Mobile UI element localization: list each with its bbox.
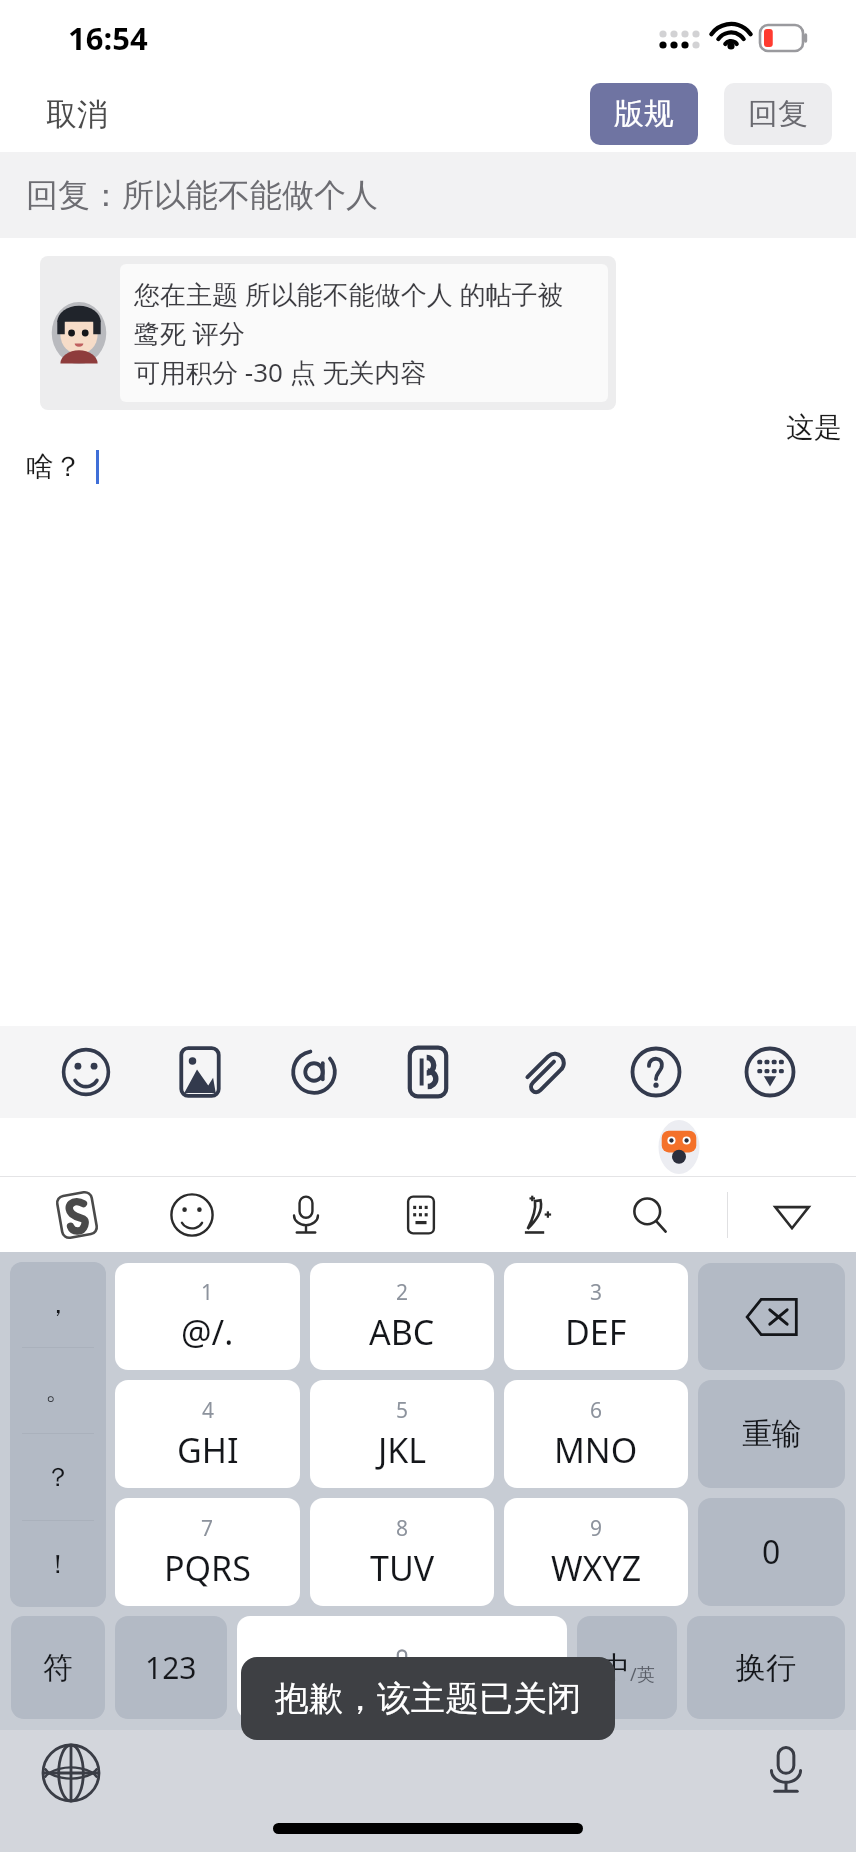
button[interactable]: 0 [698, 1498, 845, 1606]
staticText: 16:54 [68, 17, 148, 59]
button[interactable]: 回复：所以能不能做个人 [0, 152, 856, 238]
button[interactable]: 3 [504, 1263, 688, 1370]
button[interactable]: Emoji [44, 1030, 128, 1114]
staticText: 重输 [742, 1415, 802, 1453]
staticText: ！ [45, 1548, 71, 1581]
staticText: /英 [630, 1662, 655, 1687]
button[interactable]: Help [614, 1030, 698, 1114]
staticText: 啥？ [26, 449, 82, 484]
button[interactable]: 6 [504, 1380, 688, 1488]
button[interactable]: 取消 [24, 85, 130, 144]
staticText: 。 [45, 1374, 71, 1407]
staticText: 1 [201, 1278, 214, 1307]
staticText: TUV [370, 1545, 435, 1591]
button[interactable]: Handwriting [498, 1178, 572, 1252]
button[interactable]: Voice input [237, 1616, 567, 1719]
staticText: WXYZ [551, 1545, 642, 1591]
button[interactable]: Sogou assistant [652, 1120, 706, 1174]
button[interactable]: 重输 [698, 1380, 845, 1488]
button[interactable]: 4 [115, 1380, 300, 1488]
button[interactable]: Hide keyboard [728, 1030, 812, 1114]
staticText: 6 [590, 1396, 603, 1425]
staticText: 5 [396, 1396, 409, 1425]
staticText: 换行 [736, 1649, 796, 1687]
button[interactable]: ？ [10, 1434, 106, 1520]
button[interactable]: 5 [310, 1380, 494, 1488]
button[interactable]: Collapse keyboard [728, 1177, 856, 1252]
button[interactable]: 您在主题 所以能不能做个人 的帖子被 鹭死 评分 可用积分 -30 点 无关内容 [40, 256, 616, 410]
button[interactable]: ， [10, 1262, 106, 1347]
staticText: 123 [145, 1647, 197, 1688]
staticText: 2 [396, 1278, 409, 1307]
staticText: 4 [202, 1396, 215, 1425]
staticText: 9 [590, 1514, 603, 1543]
button[interactable]: 中 [577, 1616, 677, 1719]
button[interactable]: 版规 [590, 83, 698, 145]
button[interactable]: Insert image [158, 1030, 242, 1114]
button[interactable]: Dictation [758, 1742, 814, 1798]
button[interactable]: Attach file [500, 1030, 584, 1114]
button[interactable]: 符 [11, 1616, 105, 1719]
button[interactable]: Mention [272, 1030, 356, 1114]
staticText: JKL [378, 1427, 427, 1473]
staticText: 抱歉，该主题已关闭 [275, 1677, 581, 1720]
button[interactable]: Search [613, 1178, 687, 1252]
button[interactable]: 换行 [687, 1616, 845, 1719]
button[interactable]: Emoji [155, 1178, 229, 1252]
button[interactable]: 1 [115, 1263, 300, 1370]
staticText: 您在主题 所以能不能做个人 的帖子被 鹭死 评分 可用积分 -30 点 无关内容 [134, 276, 594, 390]
button[interactable]: Bold [386, 1030, 470, 1114]
button[interactable]: 123 [115, 1616, 227, 1719]
button[interactable]: Switch input language [40, 1742, 102, 1804]
button[interactable]: Sogou input settings [40, 1178, 114, 1252]
staticText: @/. [181, 1309, 234, 1355]
button[interactable]: Delete [698, 1263, 845, 1370]
button[interactable]: Voice input [269, 1178, 343, 1252]
staticText: DEF [565, 1309, 627, 1355]
staticText: 0 [762, 1530, 781, 1574]
staticText: MNO [554, 1427, 638, 1473]
button[interactable]: 。 [10, 1348, 106, 1433]
button[interactable]: 2 [310, 1263, 494, 1370]
staticText: 这是 [786, 410, 842, 445]
staticText: 回复 [748, 95, 808, 133]
button[interactable]: Keyboard layout [384, 1178, 458, 1252]
staticText: ABC [369, 1309, 435, 1355]
staticText: 7 [201, 1514, 214, 1543]
button[interactable]: 8 [310, 1498, 494, 1606]
button[interactable]: 9 [504, 1498, 688, 1606]
staticText: 8 [396, 1514, 409, 1543]
staticText: 取消 [46, 95, 108, 134]
staticText: 中 [600, 1649, 630, 1687]
staticText: PQRS [164, 1545, 251, 1591]
staticText: 版规 [614, 95, 674, 133]
staticText: GHI [177, 1427, 239, 1473]
button[interactable]: ！ [10, 1521, 106, 1607]
staticText: ？ [45, 1461, 71, 1494]
staticText: 符 [43, 1649, 73, 1687]
button[interactable]: 回复 [724, 83, 832, 145]
staticText: 3 [590, 1278, 603, 1307]
staticText: 回复：所以能不能做个人 [26, 175, 378, 215]
staticText: ， [45, 1288, 71, 1321]
button[interactable]: 7 [115, 1498, 300, 1606]
